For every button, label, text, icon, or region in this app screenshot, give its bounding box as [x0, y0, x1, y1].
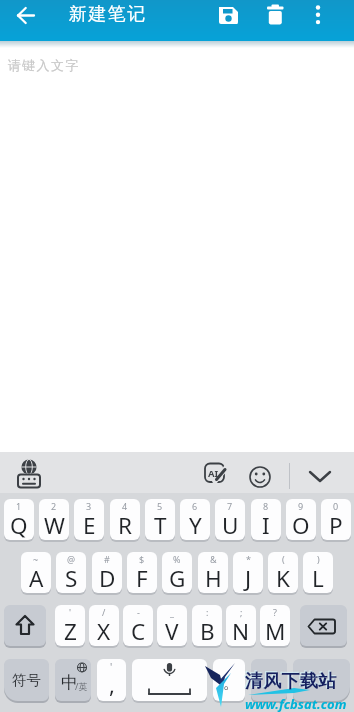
staticText: AI	[208, 467, 219, 480]
staticText: (	[282, 553, 285, 565]
staticText: @	[67, 553, 76, 565]
staticText: 5	[157, 500, 163, 512]
staticText: 符号	[12, 671, 41, 689]
staticText: L	[312, 563, 324, 593]
staticText: 新建笔记	[68, 3, 146, 26]
button[interactable]: $	[127, 552, 157, 593]
button[interactable]: 3	[74, 499, 104, 540]
button[interactable]	[300, 605, 347, 646]
staticText: 。	[223, 673, 239, 693]
staticText: 2	[51, 500, 57, 512]
staticText: W	[44, 510, 65, 540]
staticText: ;	[240, 606, 243, 618]
staticText: C	[131, 616, 146, 646]
button[interactable]	[251, 659, 287, 701]
staticText: :	[206, 606, 209, 618]
button[interactable]: 。	[213, 659, 245, 701]
staticText: www.fcbsat.com	[245, 695, 347, 712]
button[interactable]: %	[162, 552, 192, 593]
staticText: )	[317, 553, 320, 565]
staticText: 6	[192, 500, 198, 512]
button[interactable]: _	[157, 605, 187, 646]
staticText: M	[265, 616, 286, 646]
button[interactable]: 6	[180, 499, 210, 540]
button[interactable]: 9	[286, 499, 316, 540]
staticText: X	[97, 616, 111, 646]
button[interactable]: -	[123, 605, 153, 646]
staticText: %	[173, 553, 181, 565]
staticText: U	[222, 510, 239, 540]
staticText: ,	[109, 669, 115, 699]
staticText: T	[154, 510, 167, 540]
button[interactable]: ;	[226, 605, 256, 646]
button[interactable]: #	[92, 552, 122, 593]
button[interactable]: &	[198, 552, 228, 593]
staticText: /英	[75, 680, 88, 692]
staticText: 0	[333, 500, 339, 512]
button[interactable]: 中	[55, 659, 91, 701]
staticText: Z	[64, 616, 77, 646]
button[interactable]: 符号	[4, 659, 49, 701]
staticText: $	[139, 553, 145, 565]
button[interactable]	[293, 659, 350, 701]
button[interactable]: '	[97, 659, 126, 701]
staticText: _	[170, 606, 174, 618]
button[interactable]: ~	[21, 552, 51, 593]
staticText: 4	[122, 500, 128, 512]
button[interactable]: (	[268, 552, 298, 593]
button[interactable]: 7	[215, 499, 245, 540]
staticText: Y	[189, 510, 202, 540]
button[interactable]: 1	[4, 499, 34, 540]
staticText: 9	[298, 500, 304, 512]
button[interactable]: ?	[260, 605, 290, 646]
staticText: O	[292, 510, 310, 540]
button[interactable]	[4, 605, 46, 646]
button[interactable]: AI	[200, 461, 232, 487]
staticText: 清风下载站	[245, 670, 337, 693]
staticText: ~	[33, 553, 39, 565]
staticText: G	[169, 563, 186, 593]
button[interactable]: :	[192, 605, 222, 646]
button[interactable]: 2	[39, 499, 69, 540]
staticText: Q	[10, 510, 28, 540]
button[interactable]	[246, 463, 274, 491]
staticText: 7	[227, 500, 233, 512]
staticText: ?	[273, 606, 277, 618]
button[interactable]: 8	[251, 499, 281, 540]
staticText: S	[65, 563, 78, 593]
button[interactable]	[256, 0, 295, 31]
staticText: 1	[16, 500, 22, 512]
staticText: D	[99, 563, 116, 593]
button[interactable]: '	[55, 605, 85, 646]
button[interactable]	[132, 659, 207, 701]
staticText: *	[246, 553, 251, 565]
staticText: J	[245, 563, 252, 593]
button[interactable]: 5	[145, 499, 175, 540]
staticText: 3	[86, 500, 92, 512]
staticText: '	[69, 606, 72, 618]
button[interactable]	[209, 0, 248, 31]
button[interactable]: 4	[110, 499, 140, 540]
staticText: 8	[263, 500, 269, 512]
button[interactable]: @	[56, 552, 86, 593]
staticText: -	[137, 606, 140, 618]
staticText: 中	[61, 672, 78, 693]
staticText: A	[29, 563, 44, 593]
button[interactable]	[303, 0, 334, 31]
button[interactable]: )	[303, 552, 333, 593]
staticText: B	[200, 616, 215, 646]
staticText: F	[136, 563, 148, 593]
staticText: I	[262, 510, 270, 540]
button[interactable]: 0	[321, 499, 351, 540]
button[interactable]: *	[233, 552, 263, 593]
button[interactable]	[303, 460, 337, 488]
button[interactable]	[8, 0, 44, 31]
staticText: '	[110, 660, 113, 674]
button[interactable]	[12, 454, 48, 491]
button[interactable]: /	[89, 605, 119, 646]
staticText: &	[210, 553, 217, 565]
staticText: #	[104, 553, 110, 565]
staticText: E	[83, 510, 96, 540]
staticText: 请键入文字	[7, 57, 79, 73]
